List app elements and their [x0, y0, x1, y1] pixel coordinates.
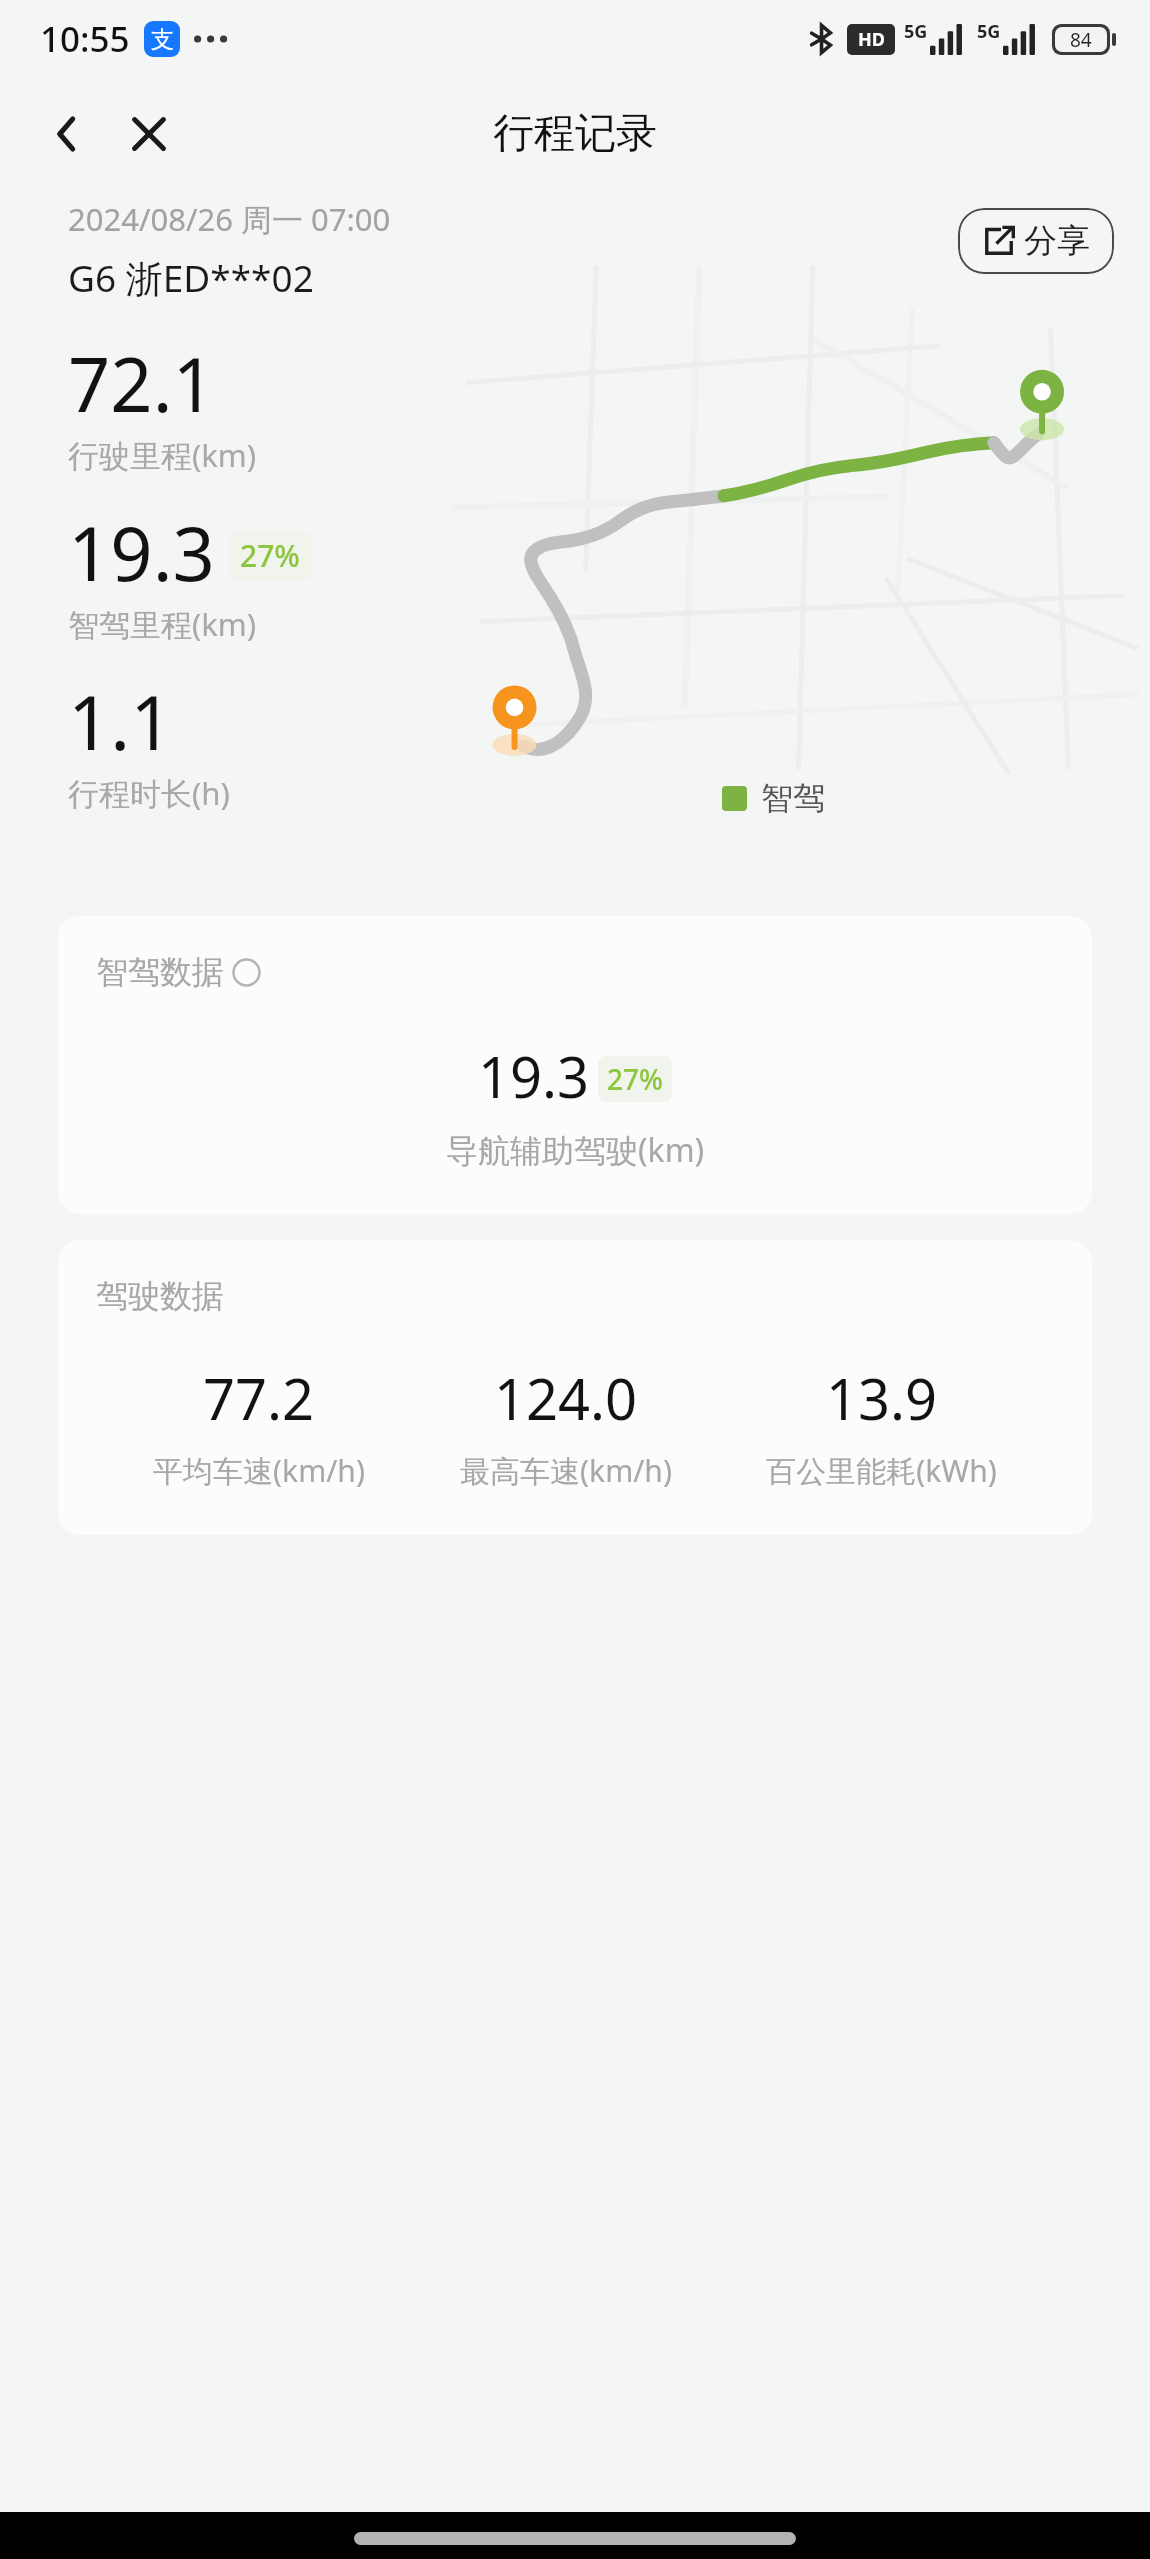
staticText: 平均车速(km/h) [153, 1450, 365, 1491]
staticText: G6 浙ED***02 [68, 252, 314, 303]
staticText: 最高车速(km/h) [460, 1450, 672, 1491]
staticText: 支 [151, 25, 174, 54]
staticText: 77.2 [203, 1360, 315, 1436]
staticText: 分享 [1024, 220, 1090, 262]
staticText: 1.1 [68, 671, 173, 772]
staticText: 驾驶数据 [96, 1276, 224, 1316]
staticText: 2024/08/26 周一 07:00 [68, 198, 391, 240]
staticText: 84 [1070, 27, 1092, 52]
staticText: 智驾里程(km) [68, 603, 257, 645]
staticText: 10:55 [40, 15, 130, 63]
staticText: 19.3 [68, 502, 215, 603]
staticText: HD [858, 27, 885, 52]
staticText: 27% [240, 535, 300, 576]
staticText: 导航辅助驾驶(km) [446, 1128, 705, 1172]
staticText: 智驾数据 [96, 952, 224, 992]
button[interactable]: 驾驶数据 [58, 1240, 1092, 1535]
staticText: 5G [904, 19, 928, 44]
staticText: 124.0 [494, 1360, 638, 1436]
staticText: 72.1 [68, 333, 215, 434]
staticText: 5G [977, 19, 1001, 44]
staticText: 行程时长(h) [68, 772, 230, 814]
staticText: 13.9 [826, 1360, 938, 1436]
button[interactable]: 关闭 [108, 93, 190, 175]
staticText: 百公里能耗(kWh) [766, 1450, 997, 1491]
staticText: 27% [607, 1060, 663, 1098]
button[interactable]: 分享 [958, 208, 1114, 274]
staticText: 行驶里程(km) [68, 434, 257, 476]
staticText: 智驾 [761, 778, 825, 818]
button[interactable]: 智驾数据 [58, 916, 1092, 1214]
button[interactable]: 返回 [26, 93, 108, 175]
staticText: 行程记录 [493, 108, 657, 160]
staticText: 19.3 [478, 1038, 590, 1114]
